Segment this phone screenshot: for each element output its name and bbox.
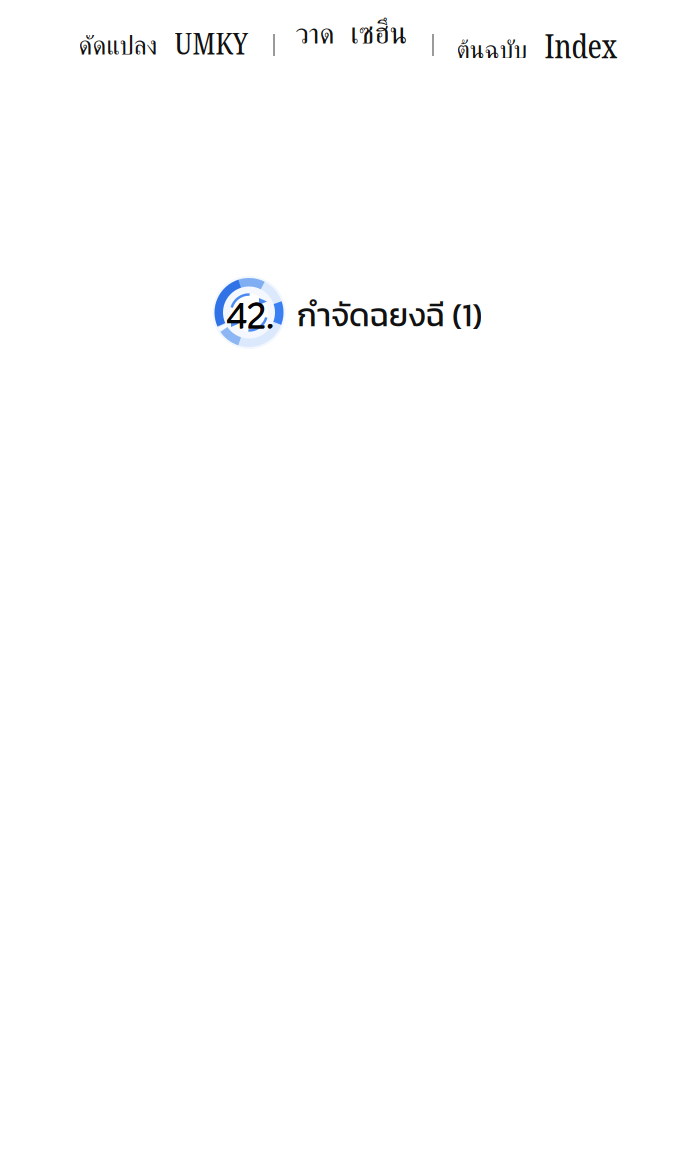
- staticText: 42.: [226, 290, 274, 339]
- button[interactable]: 42.: [0, 0, 700, 120]
- staticText: กำจัดฉยงฉี (1): [297, 291, 482, 339]
- staticText: 42.: [226, 289, 274, 338]
- staticText: UMKY: [174, 22, 248, 64]
- staticText: วาด: [295, 21, 334, 49]
- staticText: Index: [544, 23, 617, 68]
- button[interactable]: ดัดแปลง: [78, 22, 248, 64]
- staticText: 42.: [227, 289, 275, 338]
- button[interactable]: วาด: [295, 20, 407, 49]
- staticText: ดัดแปลง: [78, 34, 157, 60]
- staticText: ต้นฉบับ: [456, 38, 527, 63]
- button[interactable]: ต้นฉบับ: [456, 23, 617, 68]
- staticText: เซฮึน: [350, 20, 407, 49]
